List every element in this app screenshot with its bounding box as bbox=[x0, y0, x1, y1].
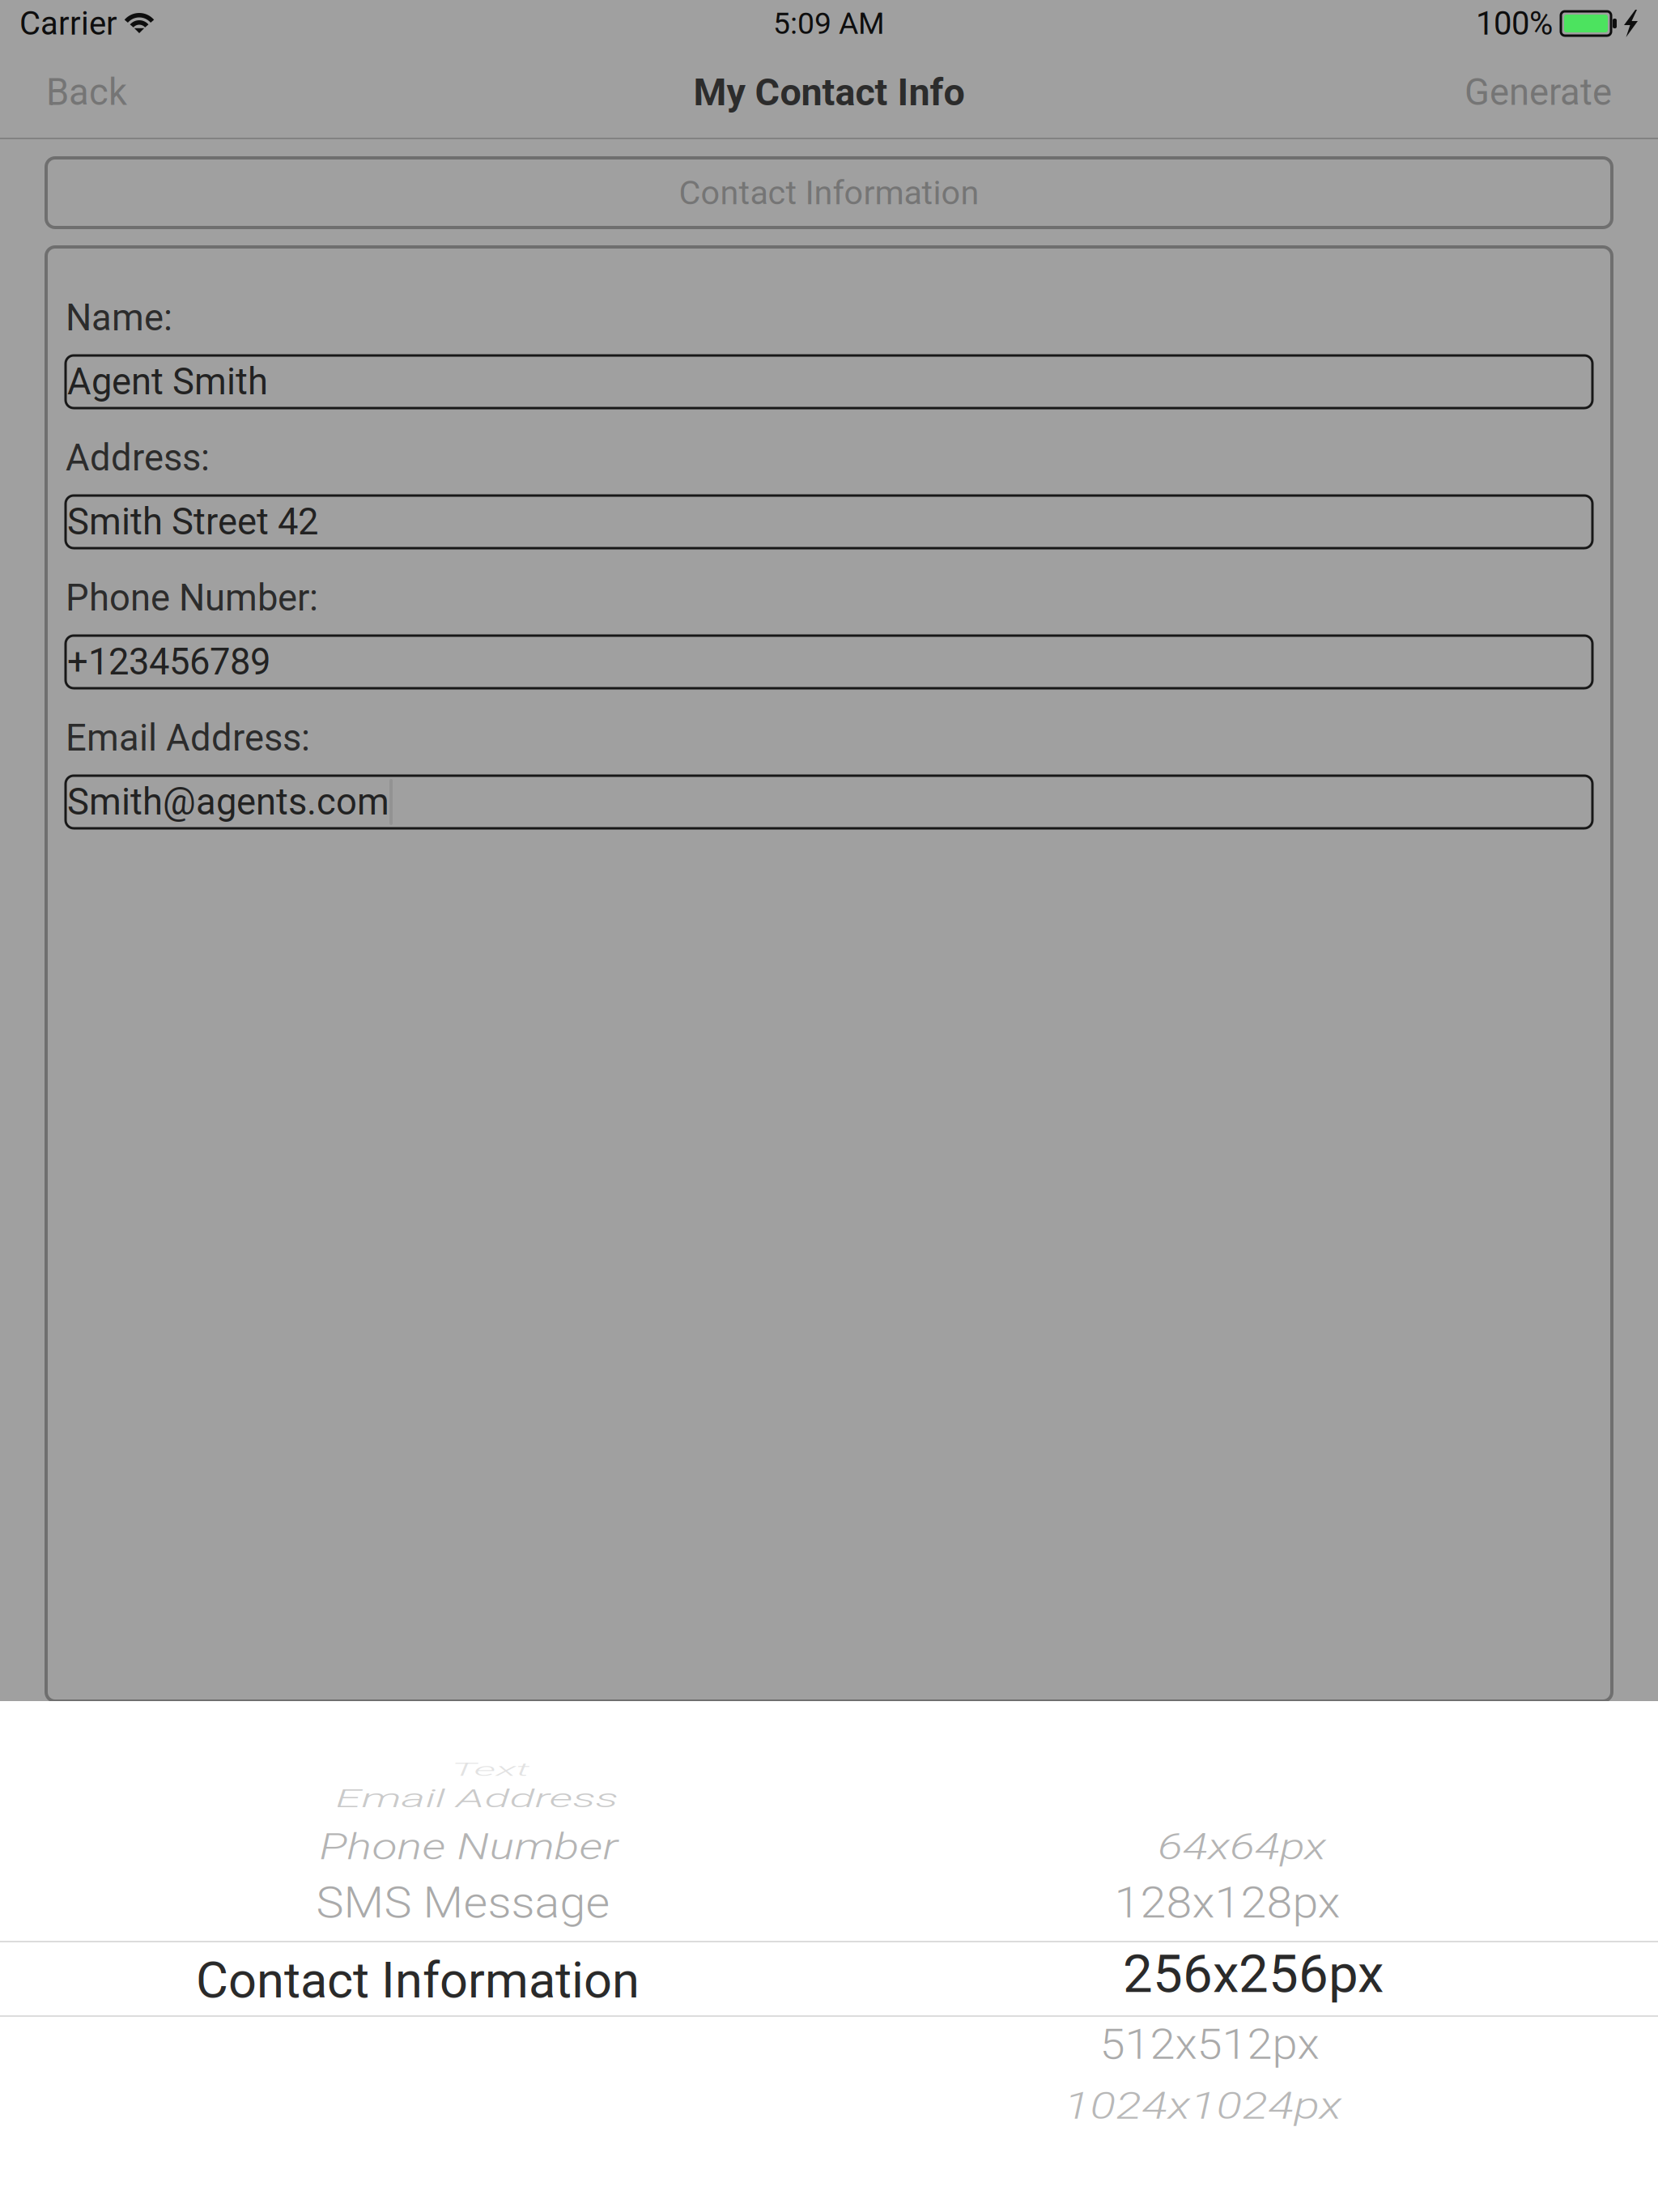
button[interactable]: 512x512px bbox=[1100, 2018, 1319, 2071]
staticText: 100% bbox=[1476, 5, 1553, 43]
button[interactable]: 64x64px bbox=[1158, 1820, 1326, 1874]
staticText: Generate bbox=[1465, 71, 1612, 114]
staticText: Back bbox=[46, 71, 127, 114]
staticText: Phone Number: bbox=[66, 576, 318, 619]
staticText: Email Address: bbox=[66, 716, 310, 759]
staticText: Smith Street 42 bbox=[67, 500, 318, 543]
button[interactable]: Text bbox=[451, 1745, 530, 1795]
staticText: SMS Message bbox=[316, 1876, 610, 1930]
button[interactable]: 256x256px bbox=[1123, 1943, 1384, 2005]
staticText: Phone Number bbox=[319, 1820, 618, 1874]
button[interactable]: Agent Smith bbox=[66, 355, 1592, 408]
button[interactable]: Contact Information bbox=[196, 1951, 640, 2010]
staticText: Agent Smith bbox=[67, 360, 268, 403]
staticText: 512x512px bbox=[1100, 2018, 1319, 2071]
button[interactable]: +123456789 bbox=[66, 636, 1592, 688]
staticText: Smith@agents.com bbox=[67, 780, 389, 823]
button[interactable]: Phone Number bbox=[319, 1820, 618, 1874]
button[interactable]: Email Address bbox=[336, 1771, 618, 1825]
staticText: 128x128px bbox=[1114, 1876, 1340, 1930]
staticText: Contact Information bbox=[196, 1951, 640, 2010]
button[interactable]: 1024x1024px bbox=[1064, 2078, 1342, 2134]
button[interactable]: 128x128px bbox=[1114, 1876, 1340, 1930]
staticText: Text bbox=[451, 1745, 530, 1795]
button[interactable]: Smith@agents.com bbox=[66, 776, 1592, 828]
button[interactable]: Contact Information bbox=[46, 158, 1612, 228]
staticText: 1024x1024px bbox=[1064, 2078, 1342, 2134]
staticText: 64x64px bbox=[1158, 1820, 1326, 1874]
staticText: Address: bbox=[66, 436, 210, 479]
staticText: 5:09 AM bbox=[773, 6, 885, 41]
staticText: 256x256px bbox=[1123, 1943, 1384, 2005]
staticText: Email Address bbox=[336, 1771, 618, 1825]
staticText: +123456789 bbox=[67, 640, 270, 683]
staticText: Carrier bbox=[19, 5, 117, 43]
staticText: My Contact Info bbox=[693, 70, 965, 114]
button[interactable]: Generate bbox=[1447, 47, 1630, 138]
button[interactable]: SMS Message bbox=[316, 1876, 610, 1930]
staticText: Contact Information bbox=[679, 173, 979, 212]
staticText: Name: bbox=[66, 296, 172, 339]
button[interactable]: Smith Street 42 bbox=[66, 496, 1592, 548]
button[interactable]: Back bbox=[28, 47, 145, 138]
